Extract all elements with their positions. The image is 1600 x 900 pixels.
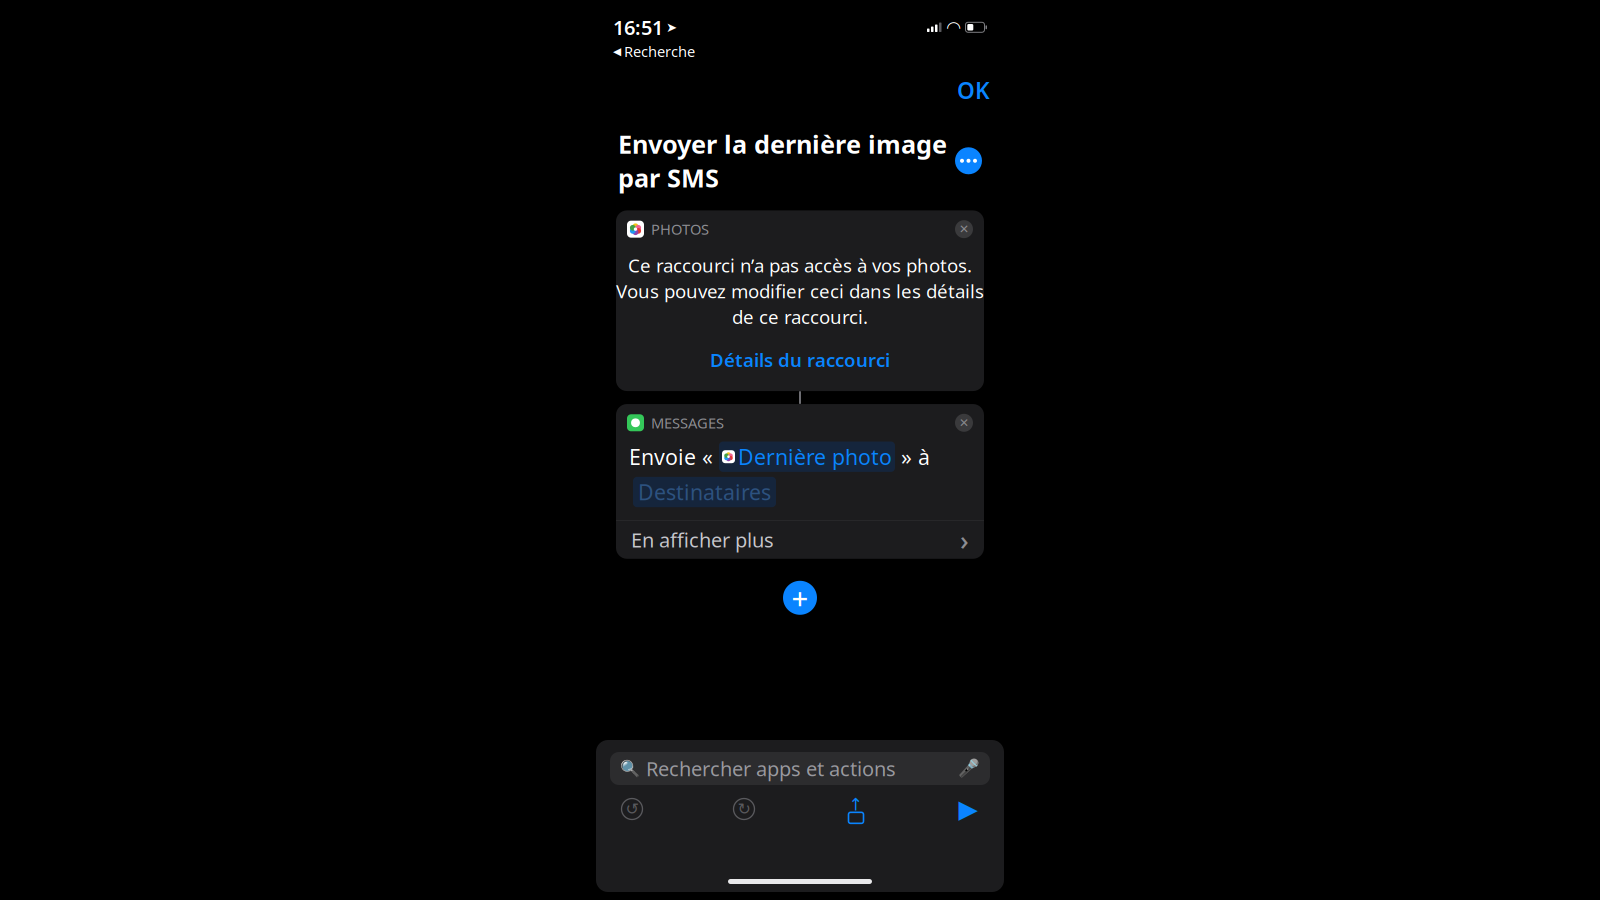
staticText: Ce raccourci n’a pas accès à vos photos. (628, 253, 972, 278)
staticText: Destinataires (638, 478, 771, 506)
staticText: Envoie « (629, 442, 719, 471)
staticText: 🔍 (620, 759, 640, 778)
staticText: MESSAGES (651, 413, 724, 433)
staticText: ✕ (959, 416, 969, 430)
button[interactable]: Rétablir (722, 789, 766, 829)
staticText: › (960, 522, 969, 557)
staticText: ◀ (613, 45, 621, 57)
staticText: 🎤 (958, 759, 980, 778)
staticText: PHOTOS (651, 219, 709, 239)
button[interactable]: Supprimer l’action (955, 414, 973, 432)
staticText: ✕ (959, 222, 969, 236)
staticText: + (791, 578, 808, 617)
button[interactable]: Options du raccourci (955, 147, 982, 174)
button[interactable]: 🔍 (610, 752, 990, 785)
button[interactable]: Exécuter (946, 789, 990, 829)
staticText: OK (957, 75, 990, 105)
button[interactable]: Partager (834, 789, 878, 829)
staticText: ▶ (958, 795, 977, 823)
button[interactable]: En afficher plus (616, 521, 984, 559)
staticText: ↑ (848, 795, 863, 814)
staticText: de ce raccourci. (732, 304, 868, 329)
button[interactable]: Supprimer l’action (955, 220, 973, 238)
staticText: Dernière photo (738, 442, 892, 471)
staticText: 16:51 (613, 14, 663, 41)
staticText: En afficher plus (631, 526, 774, 553)
staticText: ↻ (737, 800, 750, 818)
staticText: ➤ (666, 20, 677, 35)
staticText: ↺ (625, 800, 638, 818)
button[interactable]: Annuler (610, 789, 654, 829)
staticText: Vous pouvez modifier ceci dans les détai… (616, 279, 984, 303)
button[interactable]: Ajouter une action (783, 581, 817, 615)
staticText: Envoyer la dernière image par SMS (618, 127, 947, 194)
staticText: Recherche (624, 42, 695, 61)
staticText: ◠ (947, 17, 960, 37)
staticText: Rechercher apps et actions (646, 755, 896, 782)
staticText: Détails du raccourci (710, 347, 890, 372)
button[interactable]: OK (943, 69, 1004, 111)
staticText: » à (895, 442, 930, 471)
button[interactable]: Détails du raccourci (698, 338, 902, 381)
